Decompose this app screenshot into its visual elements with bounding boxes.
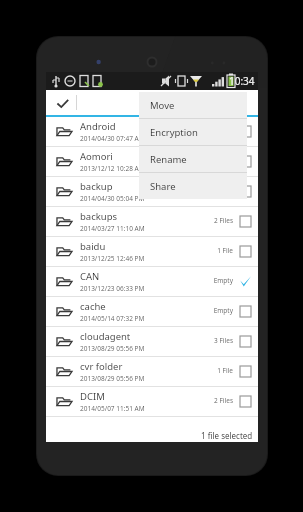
button[interactable]: Delete [176, 90, 202, 115]
staticText: backup [80, 180, 113, 193]
button[interactable]: Aomori [46, 147, 258, 176]
staticText: CAN [80, 270, 100, 283]
staticText: 1 File [217, 246, 233, 255]
staticText: 2013/12/12 10:28 AM [80, 164, 145, 173]
button[interactable]: Not selected [239, 215, 252, 228]
staticText: 2014/04/30 05:04 PM [80, 194, 145, 203]
button[interactable]: CAN [46, 267, 258, 296]
button[interactable]: Not selected [239, 155, 252, 168]
staticText: 1 File [217, 366, 233, 375]
staticText: Empty [213, 306, 233, 315]
staticText: DCIM [80, 390, 105, 403]
staticText: 2013/12/23 06:33 PM [80, 284, 145, 293]
button[interactable]: Confirm selection [50, 91, 74, 115]
button[interactable]: Not selected [239, 335, 252, 348]
button[interactable]: Copy [206, 90, 232, 115]
staticText: cvr folder [80, 360, 123, 373]
staticText: backups [80, 210, 118, 223]
button[interactable]: cloudagent [46, 327, 258, 356]
button[interactable]: Move [139, 92, 247, 118]
staticText: baidu [80, 240, 106, 253]
button[interactable]: baidu [46, 237, 258, 266]
button[interactable]: Selected [239, 275, 252, 288]
button[interactable]: backups [46, 207, 258, 236]
button[interactable]: backup [46, 177, 258, 206]
button[interactable]: Not selected [239, 245, 252, 258]
staticText: 10:34 [229, 74, 255, 88]
button[interactable]: cache [46, 297, 258, 326]
staticText: Empty [213, 276, 233, 285]
staticText: Rename [150, 153, 187, 166]
button[interactable]: Encryption [139, 119, 247, 145]
button[interactable]: Not selected [239, 125, 252, 138]
button[interactable]: Not selected [239, 305, 252, 318]
button[interactable]: cvr folder [46, 357, 258, 386]
button[interactable]: Rename [139, 146, 247, 172]
staticText: Aomori [80, 150, 113, 163]
button[interactable]: Not selected [239, 185, 252, 198]
staticText: 1 file selected [201, 430, 253, 441]
staticText: 2 Files [214, 396, 233, 405]
staticText: cache [80, 300, 106, 313]
staticText: 2014/03/27 11:10 AM [80, 224, 145, 233]
staticText: 2014/05/14 07:32 PM [80, 314, 145, 323]
staticText: 2014/05/07 11:51 AM [80, 404, 145, 413]
button[interactable]: More options [234, 92, 256, 114]
button[interactable]: Not selected [239, 365, 252, 378]
staticText: 2013/08/29 05:56 PM [80, 344, 145, 353]
staticText: 3 Files [214, 336, 233, 345]
staticText: 2013/12/25 12:46 PM [80, 254, 145, 263]
button[interactable]: Android [46, 117, 258, 146]
staticText: Move [150, 99, 175, 112]
staticText: 2 Files [214, 216, 233, 225]
button[interactable]: DCIM [46, 387, 258, 416]
staticText: 2014/04/30 07:47 AM [80, 134, 145, 143]
staticText: Share [150, 180, 176, 193]
button[interactable]: Share [139, 173, 247, 199]
button[interactable]: Not selected [239, 395, 252, 408]
staticText: Encryption [150, 126, 198, 139]
staticText: Android [80, 120, 116, 133]
staticText: 2013/08/29 05:56 PM [80, 374, 145, 383]
staticText: cloudagent [80, 330, 131, 343]
